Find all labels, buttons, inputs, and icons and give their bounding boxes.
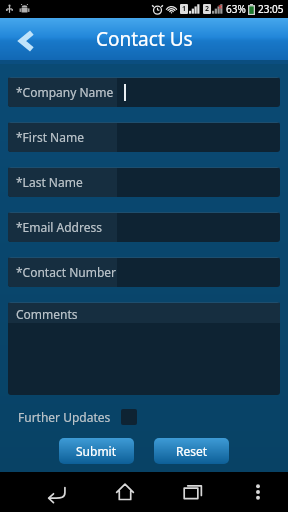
button[interactable]: *Email Address (8, 212, 280, 242)
staticText: *Email Address (16, 219, 102, 235)
button[interactable]: Back (37, 472, 77, 512)
button[interactable]: *Company Name (8, 77, 280, 107)
staticText: Contact Us (96, 26, 193, 52)
button[interactable]: Recent apps (173, 472, 213, 512)
staticText: *Contact Number (16, 264, 117, 280)
staticText: 23:05 (258, 2, 284, 16)
button[interactable]: Reset (154, 438, 229, 464)
staticText: *Last Name (16, 174, 83, 190)
button[interactable]: *Contact Number (8, 257, 280, 287)
staticText: *Company Name (16, 84, 114, 100)
staticText: 2 (205, 4, 210, 14)
staticText: Reset (176, 443, 208, 459)
button[interactable]: *First Name (8, 122, 280, 152)
button[interactable]: *Last Name (8, 167, 280, 197)
staticText: × (218, 1, 223, 12)
staticText: *First Name (16, 129, 84, 145)
button[interactable]: More options (238, 472, 278, 512)
button[interactable]: Further Updates (18, 409, 280, 425)
staticText: Further Updates (18, 409, 111, 425)
staticText: 1 (182, 4, 187, 14)
button[interactable]: Home (105, 472, 145, 512)
staticText: 63% (226, 2, 246, 16)
staticText: Submit (76, 443, 117, 459)
button[interactable]: Submit (59, 438, 134, 464)
button[interactable]: Comments (8, 302, 280, 395)
staticText: Comments (16, 306, 78, 322)
button[interactable]: Back (8, 22, 46, 60)
